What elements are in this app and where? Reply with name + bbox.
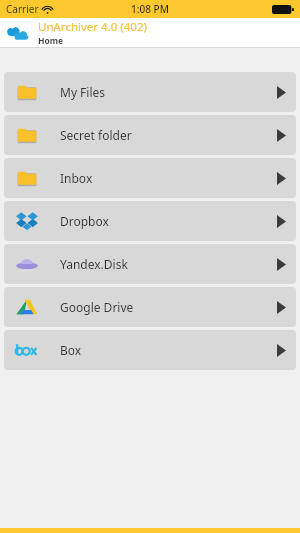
staticText: 1:08 PM: [131, 2, 169, 16]
staticText: Inbox: [60, 170, 93, 186]
staticText: Home: [38, 35, 64, 47]
staticText: UnArchiver 4.0 (402): [38, 19, 147, 35]
button[interactable]: Inbox: [4, 158, 296, 198]
staticText: Box: [60, 342, 82, 358]
button[interactable]: Box: [4, 330, 296, 370]
staticText: Secret folder: [60, 127, 132, 143]
staticText: Yandex.Disk: [60, 256, 128, 272]
button[interactable]: Secret folder: [4, 115, 296, 155]
staticText: Dropbox: [60, 213, 109, 229]
button[interactable]: Yandex.Disk: [4, 244, 296, 284]
button[interactable]: Dropbox: [4, 201, 296, 241]
staticText: Google Drive: [60, 299, 134, 315]
staticText: Carrier: [6, 2, 39, 16]
staticText: My Files: [60, 84, 106, 100]
button[interactable]: My Files: [4, 72, 296, 112]
button[interactable]: Google Drive: [4, 287, 296, 327]
